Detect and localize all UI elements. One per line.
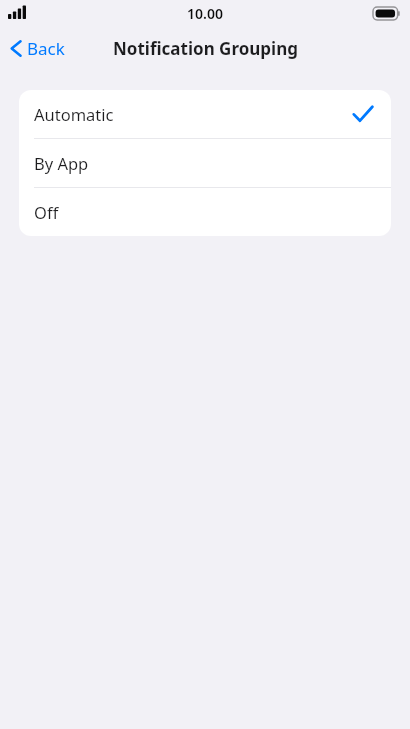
staticText: Off [34, 201, 59, 223]
staticText: Back [27, 37, 65, 60]
button[interactable]: Back [6, 33, 69, 64]
button[interactable]: Automatic [19, 90, 391, 138]
staticText: Automatic [34, 103, 114, 125]
button[interactable]: Off [19, 188, 391, 236]
button[interactable]: By App [19, 139, 391, 187]
staticText: 10.00 [187, 4, 223, 23]
staticText: Notification Grouping [113, 37, 298, 60]
staticText: By App [34, 152, 89, 174]
